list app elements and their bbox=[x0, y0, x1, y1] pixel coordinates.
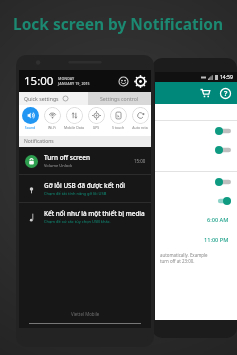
staticText: MONDAY bbox=[58, 76, 75, 81]
button[interactable] bbox=[155, 121, 237, 140]
button[interactable]: Turn off screen bbox=[19, 147, 151, 174]
button[interactable] bbox=[155, 140, 237, 159]
staticText: ? bbox=[224, 89, 228, 99]
staticText: Settings control bbox=[100, 95, 139, 102]
button[interactable]: Gỡ lỗi USB đã được kết nối bbox=[19, 175, 151, 202]
button[interactable]: 11:00 PM bbox=[155, 230, 237, 250]
staticText: 11:00 PM bbox=[204, 236, 229, 244]
staticText: Chạm để tắt tính năng gỡ lỗi USB bbox=[44, 191, 107, 196]
staticText: S touch bbox=[107, 125, 129, 130]
button[interactable]: Mobile Data bbox=[63, 107, 85, 136]
staticText: 14:59 bbox=[220, 74, 233, 81]
staticText: Gỡ lỗi USB đã được kết nối bbox=[44, 181, 126, 190]
button[interactable] bbox=[155, 191, 237, 210]
button[interactable] bbox=[155, 172, 237, 191]
staticText: 15:00 bbox=[134, 158, 146, 164]
staticText: Turn off screen bbox=[44, 153, 90, 162]
button[interactable]: User bbox=[118, 76, 129, 87]
button[interactable]: Help bbox=[218, 86, 232, 100]
button[interactable]: Cart bbox=[198, 86, 212, 100]
staticText: Notifications bbox=[24, 138, 54, 145]
staticText: Chạm để xử các tùy chọn USB khác. bbox=[44, 219, 111, 224]
staticText: 15:00 bbox=[24, 73, 54, 89]
staticText: automatically. Example bbox=[160, 252, 208, 258]
button[interactable]: Kết nối như là một thiết bị media ( bbox=[19, 203, 151, 230]
button[interactable]: Auto rota bbox=[129, 107, 151, 136]
staticText: GPS bbox=[85, 125, 107, 130]
staticText: 6:00 AM bbox=[207, 216, 229, 224]
staticText: Auto rota bbox=[129, 125, 151, 130]
staticText: JANUARY 19, 2015 bbox=[58, 81, 90, 86]
staticText: Kết nối như là một thiết bị media ( bbox=[44, 209, 146, 218]
button[interactable]: Settings control bbox=[88, 92, 151, 105]
staticText: Wi-Fi bbox=[41, 125, 63, 130]
staticText: Volume Unlock bbox=[44, 163, 73, 168]
button[interactable]: Wi-Fi bbox=[41, 107, 63, 136]
staticText: turn off at 23:00. bbox=[160, 258, 195, 264]
button[interactable]: Settings bbox=[134, 75, 146, 87]
staticText: Mobile Data bbox=[63, 125, 85, 130]
button[interactable]: Sound bbox=[19, 107, 41, 136]
button[interactable]: Quick settings bbox=[19, 92, 88, 105]
button[interactable]: GPS bbox=[85, 107, 107, 136]
button[interactable]: S touch bbox=[107, 107, 129, 136]
staticText: Lock screen by Notification bbox=[13, 13, 224, 34]
staticText: Quick settings bbox=[24, 95, 59, 102]
button[interactable]: 6:00 AM bbox=[155, 210, 237, 230]
staticText: Viettel Mobile bbox=[71, 311, 100, 317]
staticText: Sound bbox=[19, 125, 41, 130]
